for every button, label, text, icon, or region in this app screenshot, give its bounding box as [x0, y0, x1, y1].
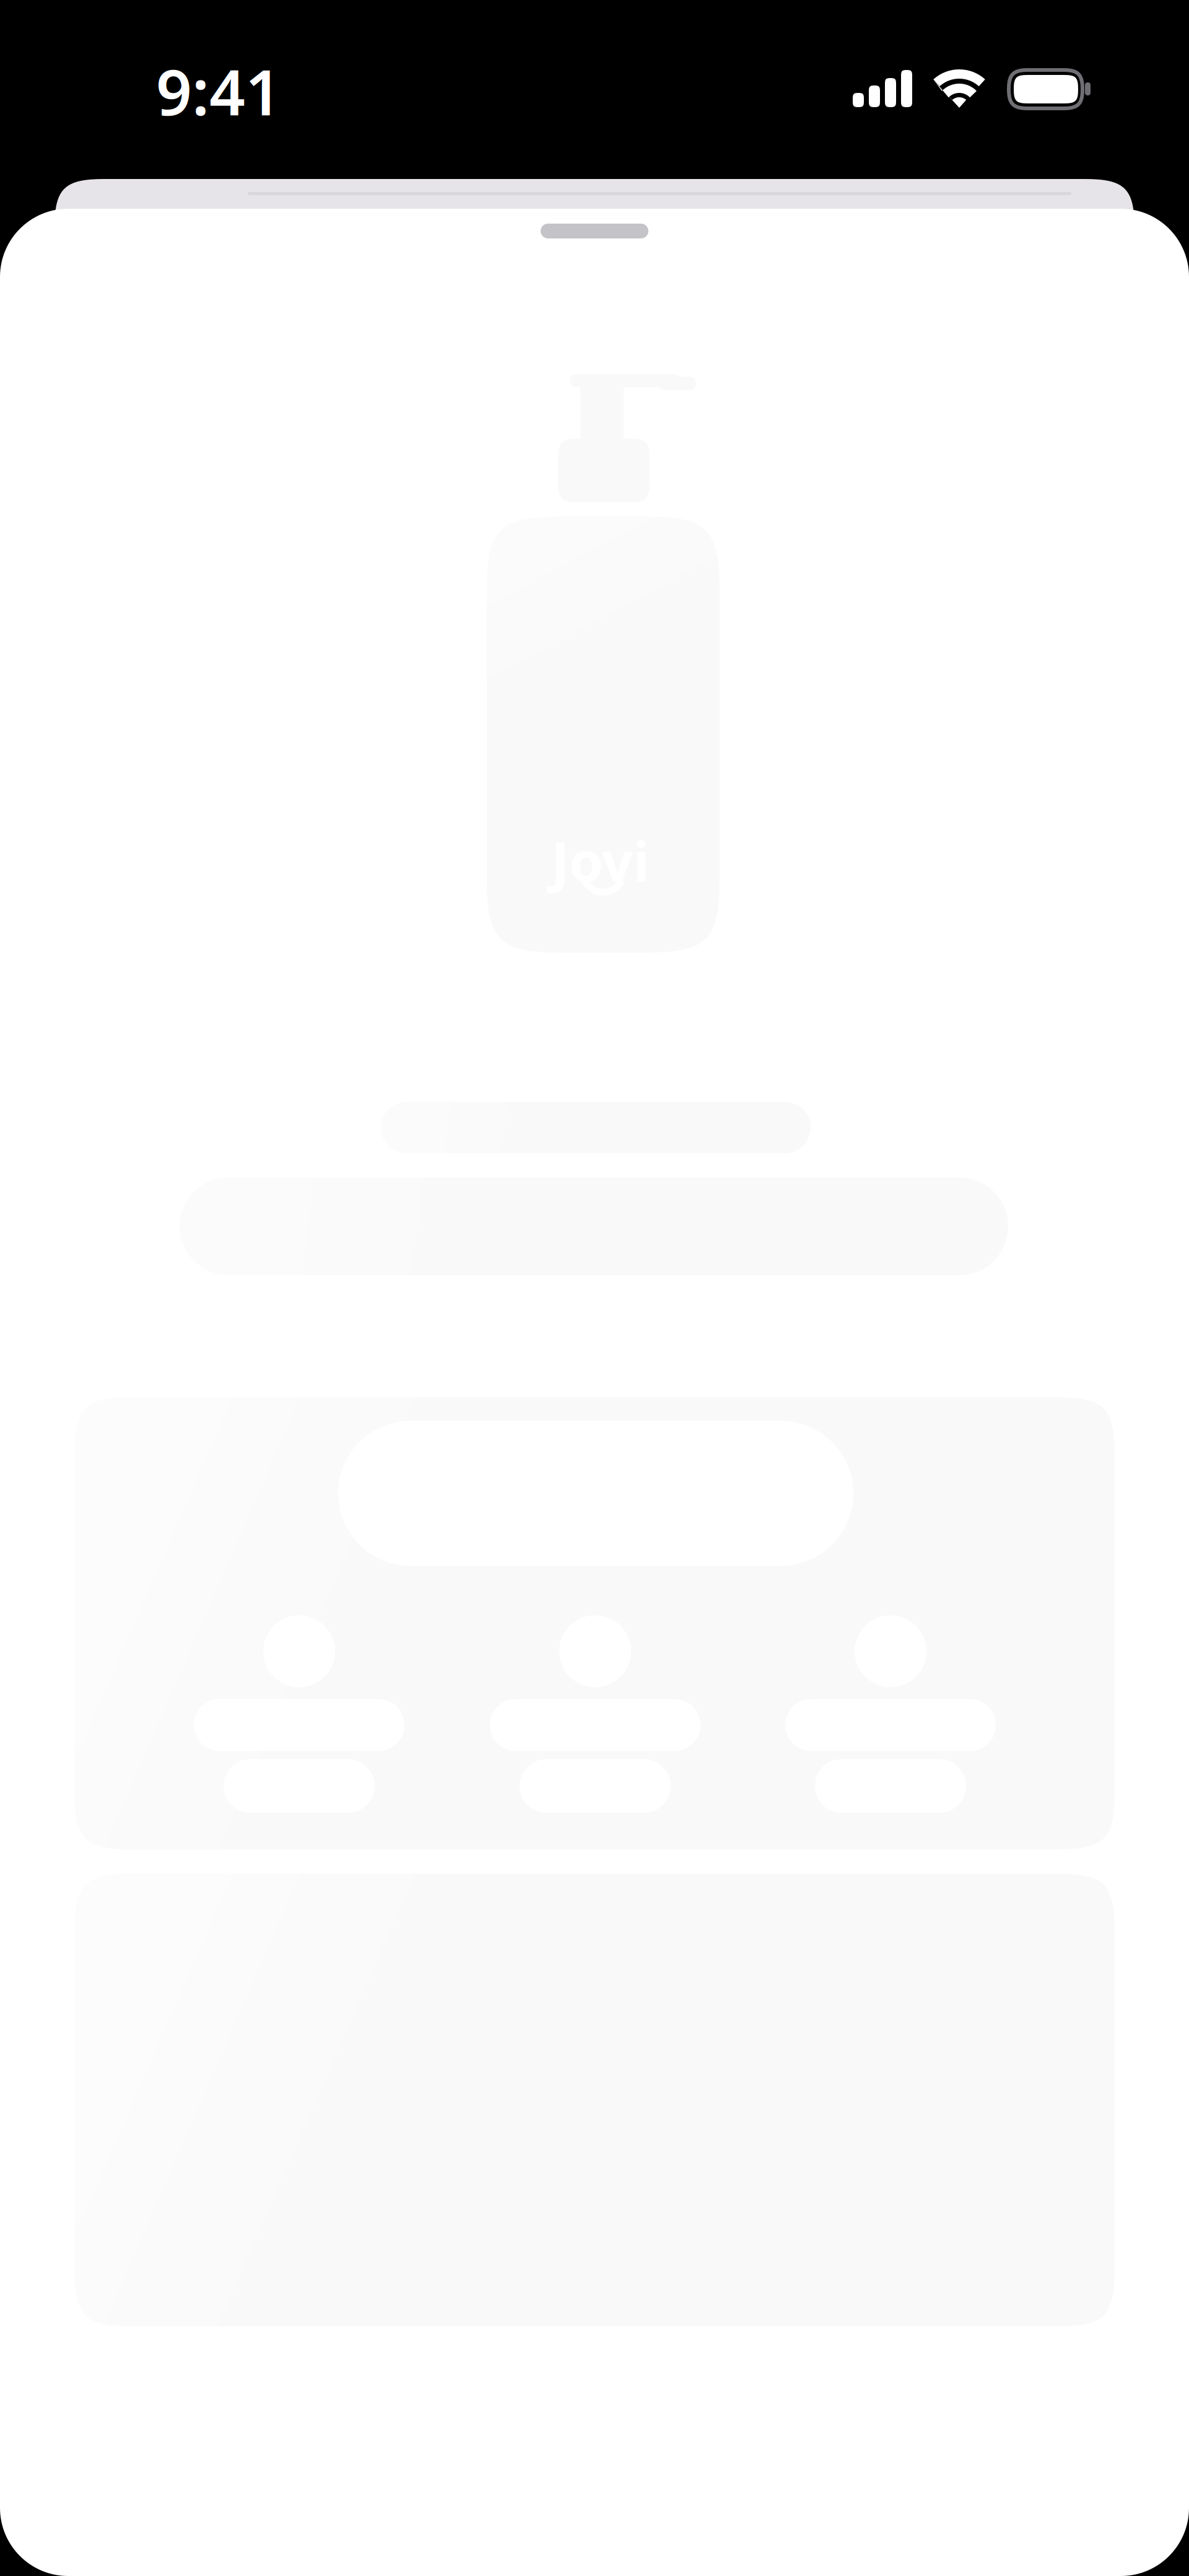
staticText: 9:41 [156, 49, 281, 133]
